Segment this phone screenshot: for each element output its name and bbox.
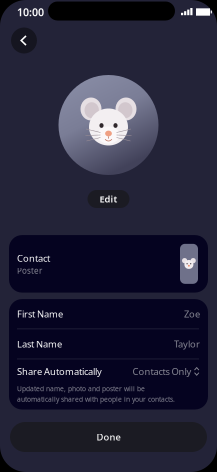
staticText: Edit [99,193,117,205]
staticText: Last Name [17,338,62,350]
button[interactable]: Last Name [9,329,208,359]
staticText: automatically shared with people in your… [17,395,175,403]
button[interactable]: Edit [87,190,129,208]
button[interactable]: Contact [9,235,208,293]
staticText: Taylor [174,338,200,350]
button[interactable]: Share Automatically [9,359,208,383]
staticText: Updated name, photo and poster will be [17,384,145,393]
staticText: Zoe [184,308,200,320]
button[interactable]: Back [11,27,37,53]
staticText: Contacts Only [132,365,191,377]
button[interactable]: Done [10,422,207,452]
staticText: Contact [17,252,50,264]
staticText: 10:00 [17,5,44,19]
staticText: Done [96,431,120,443]
staticText: First Name [17,308,63,320]
staticText: Share Automatically [17,365,102,377]
staticText: Poster [17,265,42,276]
button[interactable]: First Name [9,299,208,329]
